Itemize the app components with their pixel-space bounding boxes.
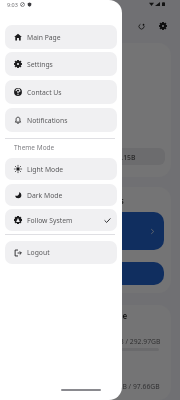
staticText: Dark Mode [27,191,63,200]
button[interactable]: Settings [5,52,117,76]
staticText: Follow System [27,216,73,225]
staticText: Total balance 0.15B [71,153,136,162]
button[interactable]: Settings [155,18,171,34]
staticText: 25.13GB / 292.97GB [97,337,161,346]
staticText: Quick Actions [69,195,124,206]
staticText: Device Storage [68,310,128,321]
button[interactable]: Logout [5,241,117,264]
staticText: Settings [27,60,53,69]
button[interactable]: Dark Mode [5,184,117,206]
button[interactable] [16,212,164,250]
button[interactable]: Light Mode [5,158,117,180]
button[interactable]: Follow System [5,209,117,231]
staticText: Notifications [27,116,68,125]
button[interactable]: Total balance 0.15B [16,148,165,165]
button[interactable]: Notifications [5,108,117,132]
staticText: Theme Mode [14,143,55,152]
button[interactable] [16,262,164,285]
staticText: 3.28GB / 97.66GB [104,382,160,391]
staticText: Contact Us [27,88,62,97]
button[interactable]: Main Page [5,25,117,49]
button[interactable]: Contact Us [5,80,117,104]
staticText: Light Mode [27,165,64,174]
staticText: Logout [27,248,50,257]
button[interactable]: Refresh [133,18,149,34]
staticText: 9:03 [7,1,18,8]
staticText: Main Page [27,33,61,42]
